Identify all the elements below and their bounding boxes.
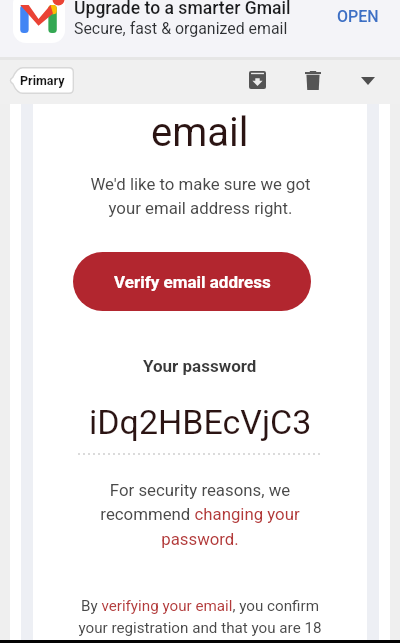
staticText: Primary (20, 73, 65, 88)
staticText: For security reasons, we recommend chang… (100, 480, 300, 550)
staticText: email (151, 109, 249, 156)
button[interactable]: More options (351, 64, 385, 98)
button[interactable]: Archive (240, 63, 274, 97)
staticText: Upgrade to a smarter Gmail (74, 0, 291, 19)
button[interactable]: OPEN (329, 1, 387, 32)
staticText: By verifying your email, you confirm you… (78, 597, 322, 637)
staticText: Verify email address (114, 272, 271, 292)
button[interactable]: Delete (296, 63, 330, 97)
staticText: OPEN (337, 7, 379, 26)
button[interactable]: Upgrade to a smarter Gmail (0, 0, 400, 57)
staticText: We'd like to make sure we got your email… (90, 174, 311, 218)
button[interactable]: Verify email address (73, 252, 311, 311)
staticText: Your password (143, 356, 257, 376)
button[interactable]: Primary (7, 67, 74, 94)
staticText: iDq2HBEcVjC3 (89, 402, 312, 442)
staticText: Secure, fast & organized email (74, 19, 288, 38)
